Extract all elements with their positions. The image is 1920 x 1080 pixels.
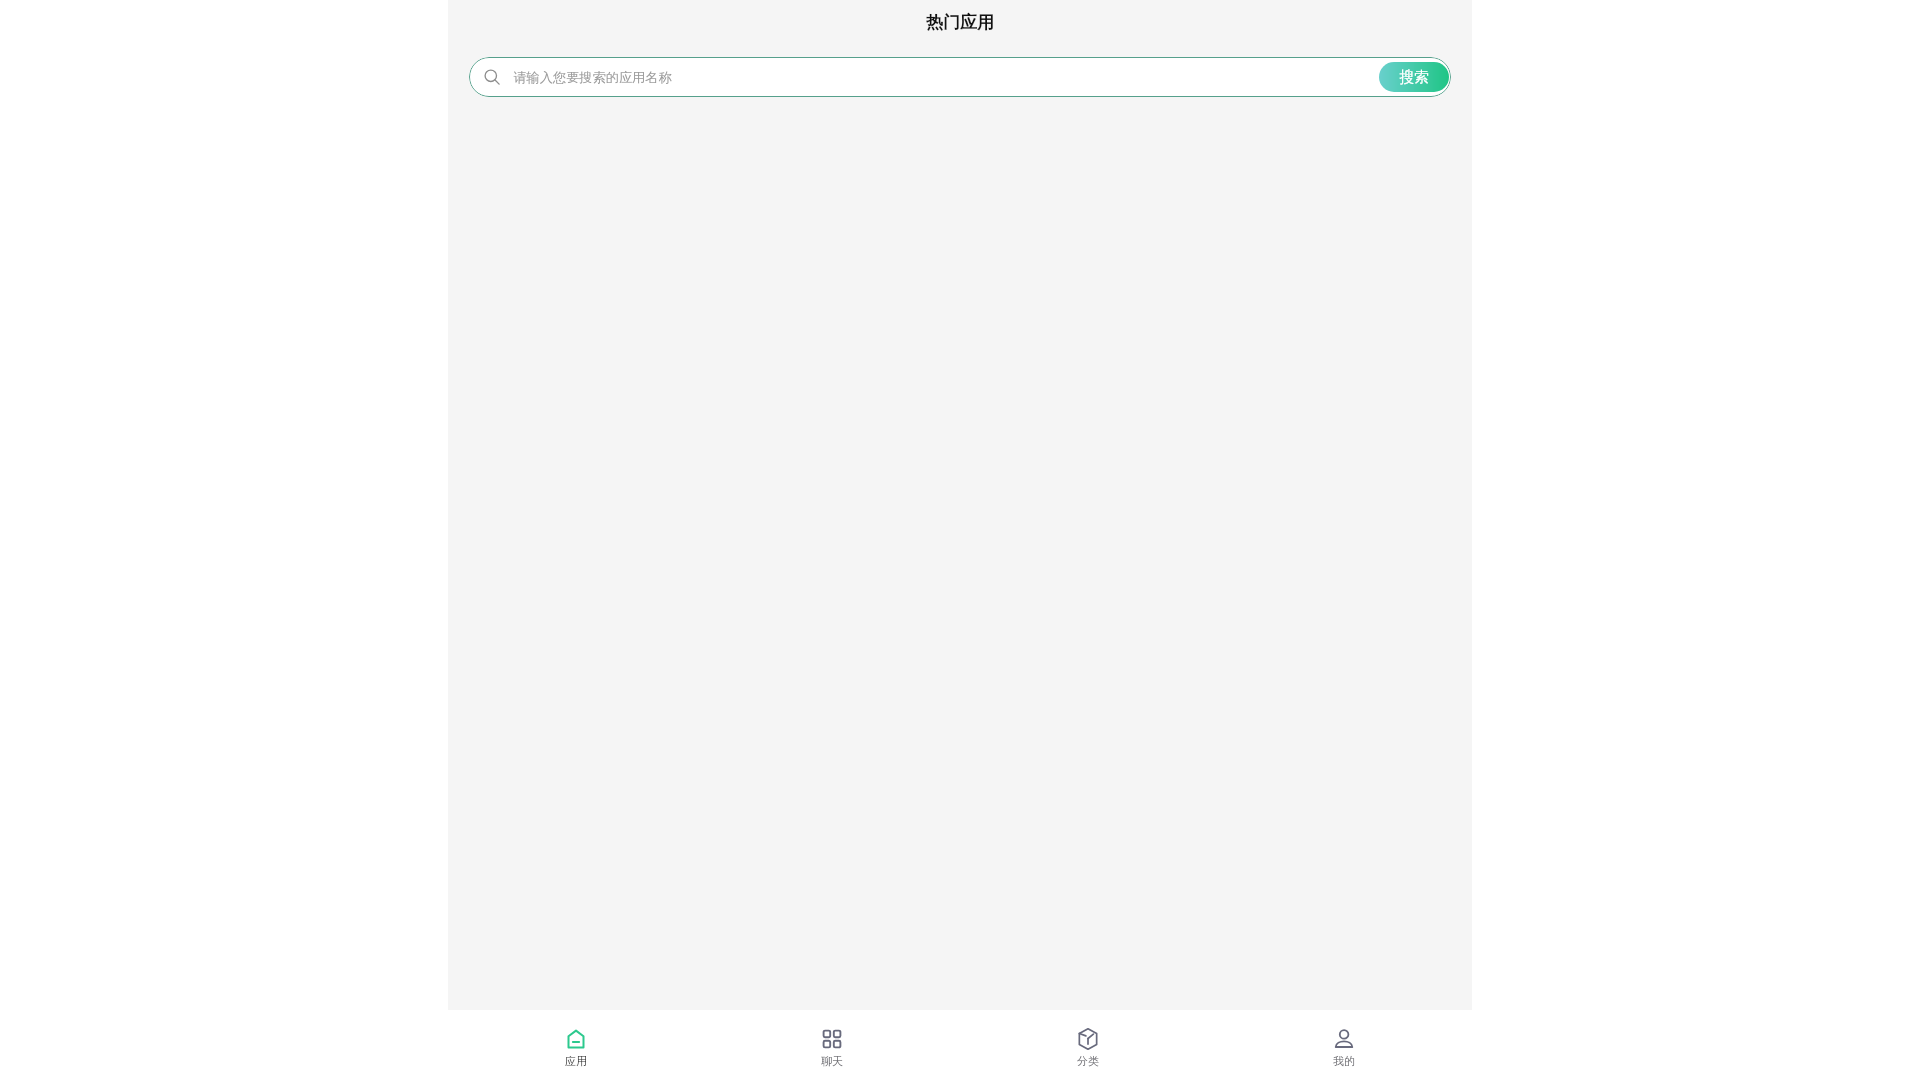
other: Search	[484, 69, 501, 86]
staticText: 搜索	[1399, 68, 1429, 87]
button[interactable]: 搜索	[1379, 62, 1449, 92]
staticText: 热门应用	[926, 12, 994, 33]
button[interactable]: 我的	[1216, 1011, 1472, 1079]
button[interactable]: 聊天	[704, 1011, 960, 1079]
button[interactable]: 应用	[448, 1011, 704, 1079]
staticText: 分类	[1077, 1054, 1099, 1068]
button[interactable]: 分类	[960, 1011, 1216, 1079]
staticText: 请输入您要搜索的应用名称	[513, 69, 672, 86]
staticText: 聊天	[821, 1054, 843, 1068]
staticText: 应用	[565, 1054, 587, 1068]
button[interactable]: Search	[469, 57, 1451, 97]
staticText: 我的	[1333, 1054, 1355, 1068]
